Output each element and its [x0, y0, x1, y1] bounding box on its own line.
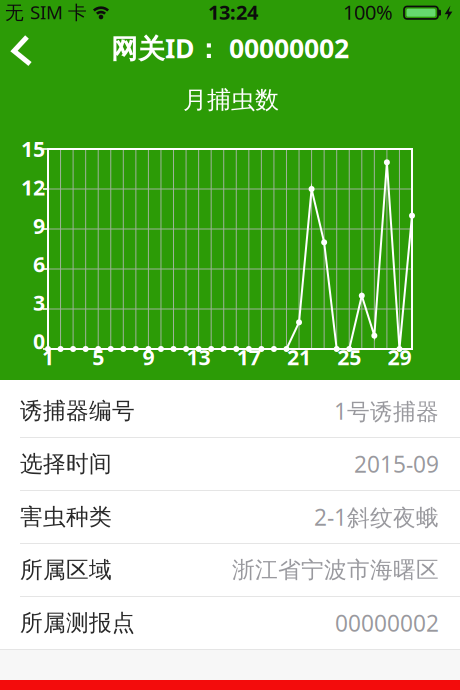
staticText: 2015-09	[354, 449, 439, 479]
staticText: 无 SIM 卡	[5, 0, 87, 24]
staticText: 12	[21, 173, 45, 201]
staticText: 13:24	[208, 0, 258, 25]
staticText: 选择时间	[20, 450, 112, 478]
staticText: 诱捕器编号	[20, 397, 135, 425]
staticText: 1号诱捕器	[334, 396, 439, 426]
staticText: 网关ID： 00000002	[111, 30, 349, 66]
staticText: 3	[33, 288, 45, 317]
staticText: 25	[337, 343, 361, 371]
button[interactable]: Back	[0, 28, 44, 72]
staticText: 月捕虫数	[183, 85, 279, 115]
staticText: 0	[33, 327, 45, 355]
staticText: 29	[387, 343, 411, 371]
staticText: 2-1斜纹夜蛾	[314, 502, 439, 532]
staticText: 21	[287, 343, 311, 371]
staticText: 9	[33, 211, 45, 240]
staticText: 6	[33, 250, 45, 278]
staticText: 9	[142, 343, 154, 371]
staticText: 13	[187, 343, 211, 371]
staticText: 所属区域	[20, 556, 112, 584]
staticText: 15	[21, 135, 45, 163]
staticText: 00000002	[335, 608, 439, 638]
staticText: 100%	[343, 0, 393, 25]
staticText: 浙江省宁波市海曙区	[232, 556, 439, 584]
staticText: 害虫种类	[20, 503, 112, 531]
staticText: 所属测报点	[20, 609, 135, 637]
staticText: 17	[237, 343, 261, 371]
staticText: 1	[42, 343, 54, 371]
staticText: 5	[92, 343, 104, 371]
